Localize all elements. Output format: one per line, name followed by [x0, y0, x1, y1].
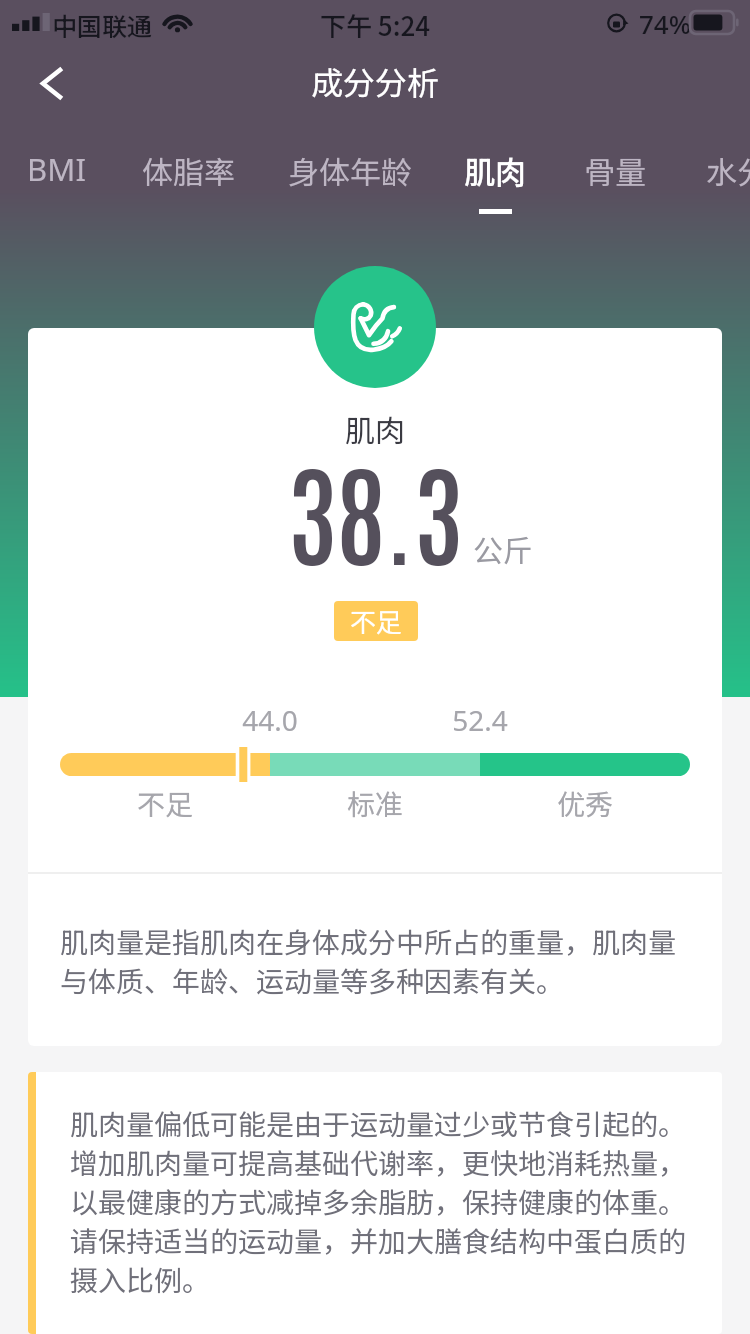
button[interactable]: 标准	[270, 783, 480, 824]
staticText: 52.4	[420, 701, 540, 739]
staticText: 肌肉	[464, 148, 526, 193]
staticText: 不足	[137, 783, 194, 824]
button[interactable]: 体脂率	[118, 120, 258, 230]
button[interactable]: 水分	[667, 120, 750, 230]
button[interactable]: 优秀	[480, 783, 690, 824]
staticText: 体脂率	[142, 148, 235, 193]
staticText: 身体年龄	[288, 148, 412, 193]
button[interactable]: 身体年龄	[280, 120, 420, 230]
button[interactable]: 肌肉	[425, 120, 565, 230]
button[interactable]: BMI	[0, 120, 126, 230]
staticText: 74%	[639, 6, 691, 41]
staticText: 肌肉量是指肌肉在身体成分中所占的重量，肌肉量与体质、年龄、运动量等多种因素有关。	[60, 921, 694, 1000]
staticText: 44.0	[210, 701, 330, 739]
staticText: 标准	[347, 783, 404, 824]
staticText: 肌肉	[345, 407, 405, 450]
staticText: 下午 5:24	[320, 6, 431, 44]
staticText: 骨量	[584, 148, 646, 193]
staticText: 优秀	[557, 783, 614, 824]
staticText: 成分分析	[311, 58, 440, 104]
staticText: 中国联通	[52, 7, 153, 43]
button[interactable]: 骨量	[545, 120, 685, 230]
staticText: 不足	[350, 602, 403, 640]
button[interactable]: Back	[0, 46, 96, 120]
staticText: 肌肉量偏低可能是由于运动量过少或节食引起的。增加肌肉量可提高基础代谢率，更快地消…	[70, 1103, 700, 1299]
button[interactable]: 不足	[334, 601, 418, 641]
staticText: 公斤	[473, 527, 533, 570]
staticText: BMI	[27, 148, 86, 190]
staticText: 38.3	[288, 437, 463, 581]
button[interactable]: 不足	[60, 783, 270, 824]
staticText: 水分	[706, 148, 750, 193]
